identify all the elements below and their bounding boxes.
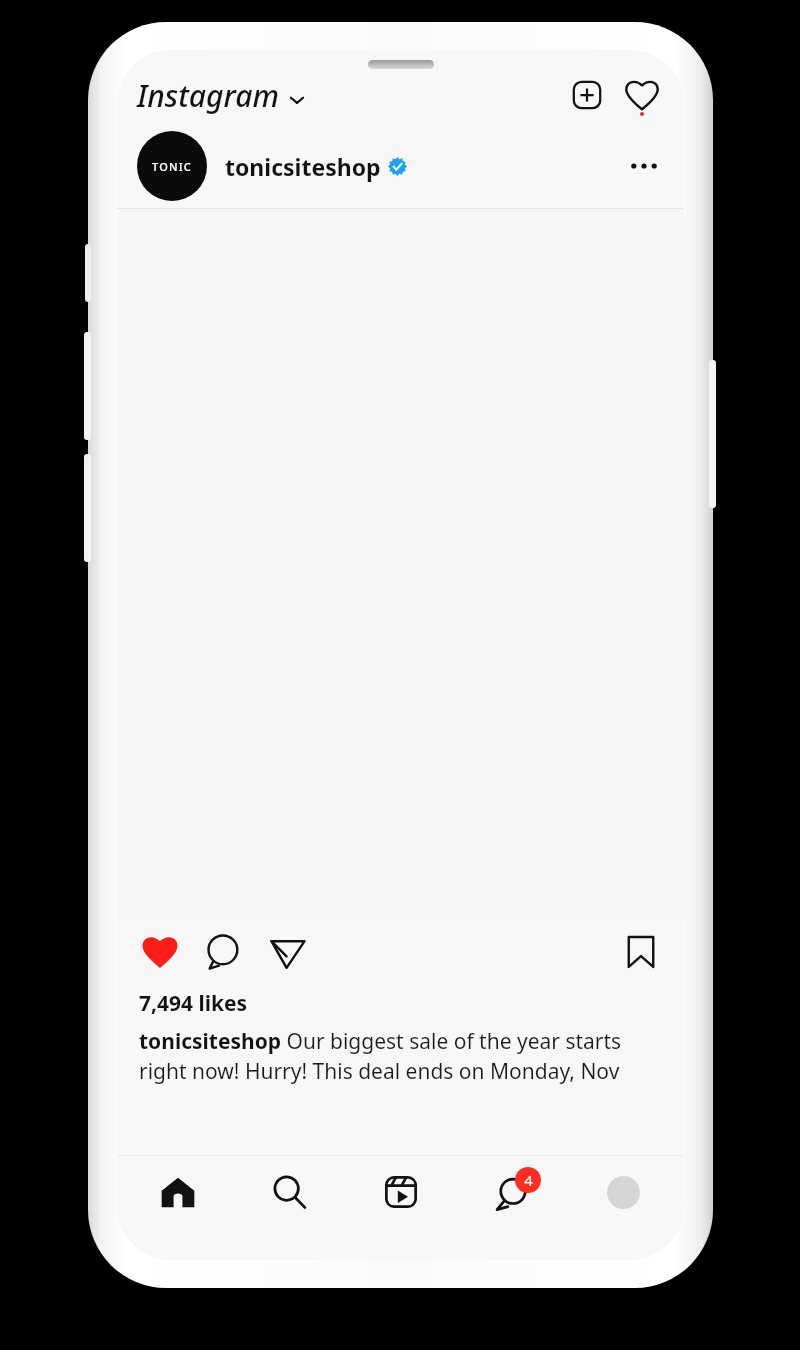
button[interactable]: Reels (374, 1165, 428, 1219)
button[interactable]: Unlike (137, 929, 183, 975)
button[interactable]: Comment (201, 929, 247, 975)
button[interactable]: tonicsiteshop (225, 151, 407, 182)
button[interactable]: 7,494 likes (139, 989, 248, 1018)
button[interactable]: Instagram (137, 71, 305, 120)
staticText: 4 (524, 1170, 533, 1190)
button[interactable]: Save (618, 929, 664, 975)
button[interactable]: Share (265, 929, 311, 975)
staticText: tonicsiteshop (225, 151, 381, 182)
button[interactable]: Search (262, 1165, 316, 1219)
staticText: TONIC (152, 159, 193, 174)
staticText: Instagram (137, 75, 279, 116)
button[interactable]: New post (566, 74, 608, 116)
button[interactable]: Home (151, 1165, 205, 1219)
button[interactable]: More options (622, 144, 666, 188)
button[interactable]: Activity (620, 73, 664, 117)
button[interactable]: Profile (596, 1165, 650, 1219)
button[interactable]: TONIC (137, 131, 207, 201)
button[interactable]: tonicsiteshop Our biggest sale of the ye… (139, 1027, 662, 1085)
button[interactable]: Messages (485, 1165, 539, 1219)
